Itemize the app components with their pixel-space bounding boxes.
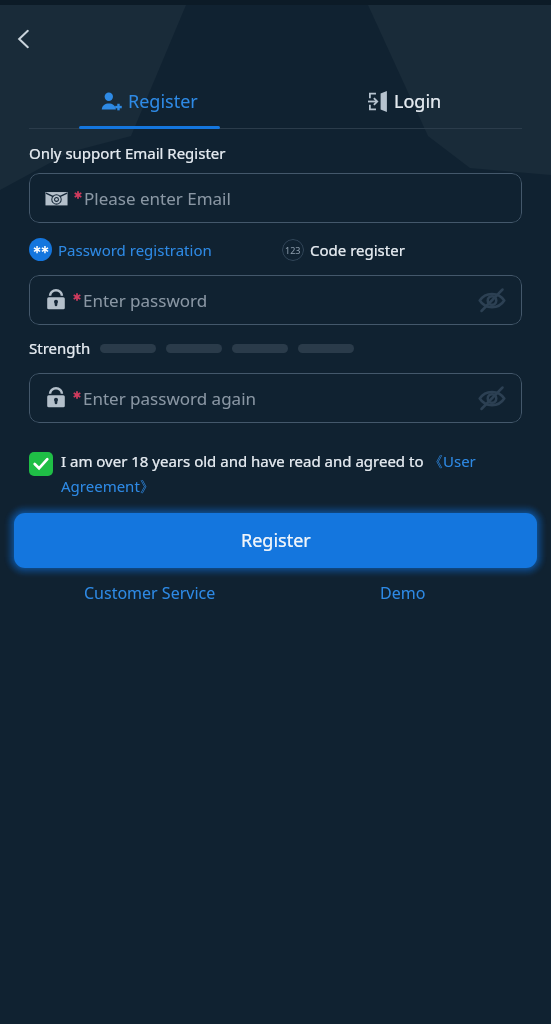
button[interactable]: Demo	[370, 576, 436, 610]
button[interactable]: 123	[282, 239, 405, 261]
button[interactable]: Enter password again	[29, 373, 522, 423]
staticText: Demo	[380, 582, 426, 604]
button[interactable]: Customer Service	[74, 576, 226, 610]
staticText: Only support Email Register	[29, 143, 226, 163]
staticText: Login	[394, 89, 442, 114]
button[interactable]: Please enter Email	[29, 173, 522, 223]
button[interactable]: Password registration	[29, 238, 212, 261]
staticText: Code register	[310, 240, 405, 260]
button[interactable]: Show password	[479, 287, 505, 313]
button[interactable]: Enter password	[29, 275, 522, 325]
staticText: Enter password	[83, 289, 208, 312]
staticText: Please enter Email	[84, 187, 231, 210]
button[interactable]: Register	[78, 81, 220, 122]
button[interactable]: Register	[14, 513, 537, 568]
button[interactable]: Login	[346, 81, 464, 122]
staticText: Register	[128, 89, 198, 114]
staticText: Enter password again	[83, 387, 257, 410]
button[interactable]: Back	[2, 17, 46, 61]
staticText: Password registration	[58, 240, 212, 260]
button[interactable]: 《User	[428, 451, 476, 471]
button[interactable]: I am over 18 years old	[29, 452, 53, 476]
staticText: Register	[241, 528, 311, 553]
staticText: Customer Service	[84, 582, 216, 604]
button[interactable]: Agreement》	[61, 476, 155, 496]
staticText: 123	[285, 244, 301, 256]
staticText: I am over 18 years old and have read and…	[61, 451, 428, 471]
button[interactable]: Show password	[479, 385, 505, 411]
staticText: Strength	[29, 338, 91, 358]
